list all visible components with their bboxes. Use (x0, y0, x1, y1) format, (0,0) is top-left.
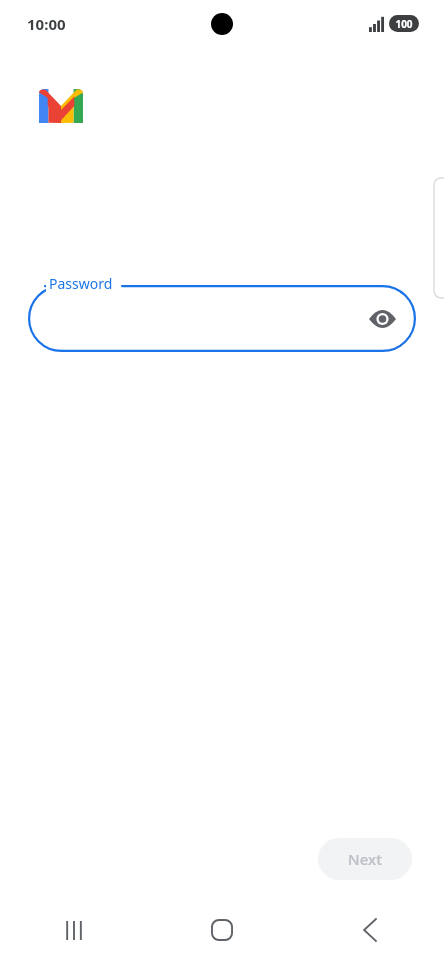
other: Gmail (39, 89, 83, 123)
staticText: Password (49, 274, 113, 293)
button[interactable]: Show password (28, 285, 416, 352)
staticText: Next (348, 849, 382, 869)
button[interactable]: Next (318, 838, 412, 880)
button[interactable]: Home (148, 898, 296, 962)
button[interactable]: Back (296, 898, 444, 962)
button[interactable]: Show password (362, 299, 402, 339)
button[interactable]: Recents (0, 898, 148, 962)
staticText: 10:00 (27, 14, 66, 34)
staticText: 100 (395, 17, 413, 31)
